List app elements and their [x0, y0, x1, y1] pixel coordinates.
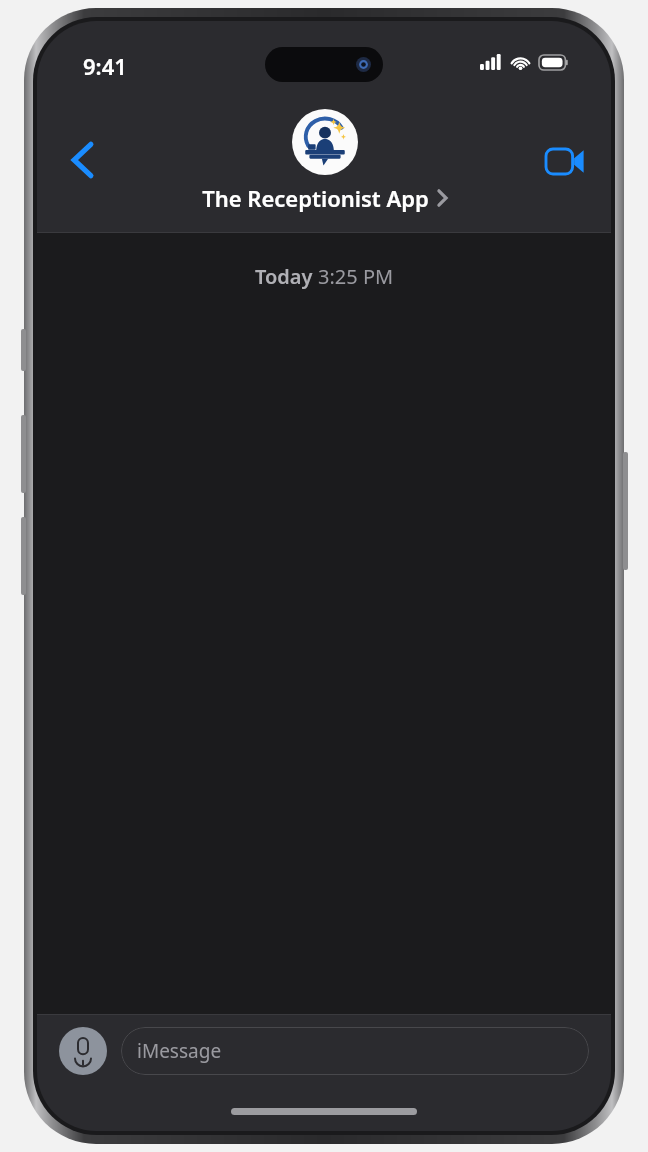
button[interactable]: iMessage [121, 1027, 589, 1075]
staticText: 3:25 PM [318, 263, 394, 290]
button[interactable]: The Receptionist App [202, 109, 447, 213]
staticText: 9:41 [83, 51, 127, 81]
staticText: The Receptionist App [202, 183, 429, 213]
button[interactable]: Back [55, 133, 109, 187]
button[interactable]: Dictate audio message [59, 1027, 107, 1075]
button[interactable]: FaceTime video call [539, 135, 591, 187]
staticText: iMessage [137, 1038, 222, 1064]
staticText: Today [255, 263, 318, 290]
